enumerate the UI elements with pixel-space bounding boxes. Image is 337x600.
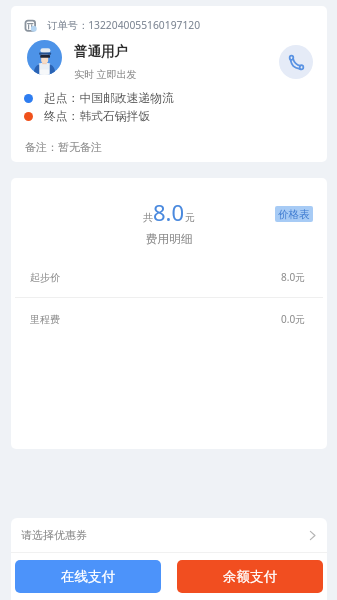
button[interactable]: 请选择优惠券 <box>11 518 327 552</box>
other: 选择优惠券 <box>309 530 316 541</box>
staticText: 起步价 <box>30 271 60 284</box>
button[interactable]: 拨打电话 <box>279 45 313 79</box>
staticText: 终点：韩式石锅拌饭 <box>44 109 151 123</box>
staticText: 8.0元 <box>281 270 306 284</box>
staticText: 起点：中国邮政速递物流 <box>44 91 174 105</box>
staticText: 元 <box>185 211 195 224</box>
staticText: 里程费 <box>30 313 60 326</box>
staticText: 订单号：1322040055160197120 <box>47 18 201 32</box>
staticText: 在线支付 <box>61 568 115 585</box>
button[interactable]: 价格表 <box>275 206 313 222</box>
staticText: 8.0 <box>153 197 185 227</box>
staticText: 价格表 <box>278 208 310 221</box>
staticText: 请选择优惠券 <box>21 528 87 542</box>
button[interactable]: 在线支付 <box>15 560 161 593</box>
staticText: 0.0元 <box>281 312 306 326</box>
staticText: 备注：暂无备注 <box>25 140 102 154</box>
staticText: 实时 立即出发 <box>74 67 137 81</box>
staticText: 费用明细 <box>11 232 327 247</box>
staticText: 普通用户 <box>74 43 128 60</box>
staticText: 余额支付 <box>223 568 277 585</box>
button[interactable]: 余额支付 <box>177 560 323 593</box>
staticText: 共 <box>143 211 153 224</box>
